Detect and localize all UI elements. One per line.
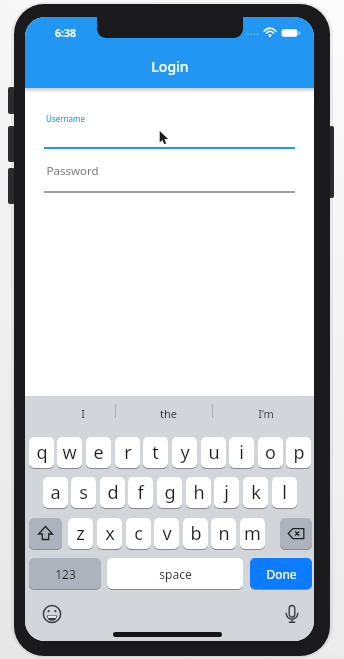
button[interactable]: h [186,477,211,508]
button[interactable]: a [43,477,68,508]
button[interactable] [44,110,295,151]
button[interactable]: q [29,437,54,468]
button[interactable]: n [211,518,236,549]
button[interactable]: l [272,477,297,508]
button[interactable]: Login [25,55,314,77]
button[interactable]: I’m [251,405,281,421]
button[interactable] [42,604,62,624]
staticText: k [251,480,261,505]
staticText: I [81,406,85,421]
staticText: n [218,521,230,546]
button[interactable]: b [183,518,208,549]
button[interactable]: f [128,477,153,508]
button[interactable]: g [157,477,182,508]
staticText: p [293,440,305,465]
staticText: i [239,440,244,465]
staticText: Password [46,163,99,179]
button[interactable]: t [143,437,168,468]
button[interactable] [29,518,62,549]
button[interactable]: v [154,518,179,549]
button[interactable]: i [229,437,254,468]
button[interactable]: e [86,437,111,468]
staticText: t [152,440,159,465]
button[interactable]: z [68,518,93,549]
staticText: q [36,440,48,465]
button[interactable]: 123 [29,558,101,589]
staticText: f [137,480,144,505]
button[interactable]: p [286,437,311,468]
staticText: the [160,406,177,421]
button[interactable]: space [107,558,243,589]
button[interactable]: Done [250,558,312,589]
staticText: y [180,440,190,465]
staticText: 6:38 [55,26,76,40]
staticText: g [164,480,176,505]
button[interactable]: u [201,437,226,468]
staticText: h [193,480,205,505]
staticText: I’m [258,406,274,421]
button[interactable]: x [97,518,122,549]
staticText: s [79,480,88,505]
button[interactable]: j [214,477,239,508]
staticText: Username [46,113,85,124]
staticText: c [134,521,143,546]
staticText: space [159,566,192,582]
staticText: m [244,521,261,546]
button[interactable]: s [71,477,96,508]
button[interactable]: c [126,518,151,549]
staticText: z [76,521,85,546]
staticText: Login [151,57,189,76]
staticText: l [282,480,287,505]
button[interactable]: I [68,405,98,421]
staticText: Done [266,566,297,582]
staticText: e [93,440,104,465]
button[interactable] [280,518,312,549]
staticText: x [105,521,115,546]
button[interactable] [282,603,302,625]
button[interactable]: the [153,405,183,421]
staticText: r [124,440,132,465]
button[interactable]: d [100,477,125,508]
button[interactable]: o [258,437,283,468]
button[interactable]: m [240,518,265,549]
staticText: a [50,480,61,505]
staticText: d [107,480,119,505]
staticText: 123 [55,566,76,582]
staticText: j [224,480,229,505]
staticText: w [62,440,77,465]
button[interactable] [44,157,295,195]
staticText: u [208,440,220,465]
button[interactable]: w [57,437,82,468]
staticText: b [190,521,202,546]
button[interactable]: r [115,437,140,468]
button[interactable]: k [243,477,268,508]
button[interactable]: y [172,437,197,468]
staticText: o [265,440,276,465]
staticText: v [162,521,172,546]
